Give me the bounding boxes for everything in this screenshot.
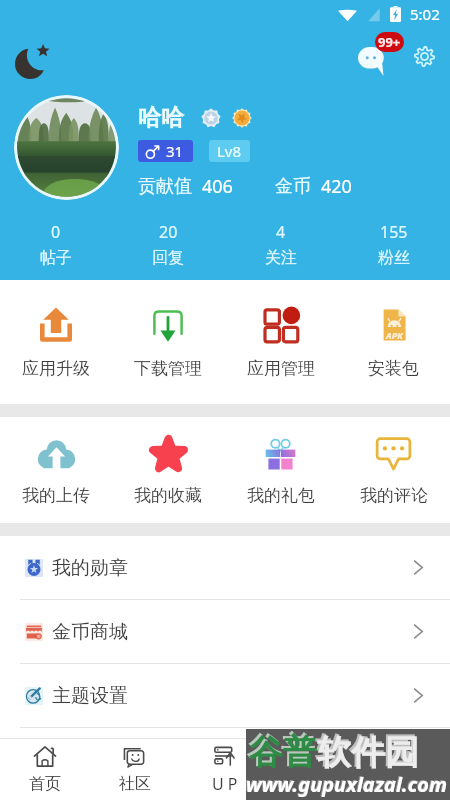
staticText: 哈哈	[138, 103, 184, 132]
staticText: www.gupuxlazal.com	[246, 771, 448, 798]
button[interactable]: 我的礼包	[224, 417, 337, 523]
staticText: U P	[212, 773, 238, 795]
button[interactable]: 社区	[90, 739, 180, 800]
staticText: 软件园	[317, 731, 419, 774]
staticText: 帖子	[40, 248, 72, 268]
staticText: 155	[380, 221, 408, 243]
staticText: 应用升级	[22, 358, 90, 379]
button[interactable]: U P	[180, 739, 270, 800]
button[interactable]: 我的	[360, 739, 450, 800]
staticText: 420	[321, 174, 352, 199]
button[interactable]: Avatar	[14, 95, 119, 200]
staticText: Lv8	[217, 141, 242, 161]
staticText: 金币商城	[52, 620, 128, 644]
staticText: 谷普	[249, 731, 317, 774]
staticText: 5:02	[410, 4, 440, 24]
staticText: 金币	[275, 175, 311, 198]
staticText: 谷普	[247, 729, 315, 772]
button[interactable]: Settings	[401, 33, 447, 79]
staticText: 粉丝	[378, 248, 410, 268]
staticText: 首页	[29, 774, 61, 794]
button[interactable]: 0	[0, 221, 112, 268]
staticText: 31	[166, 141, 184, 161]
staticText: 20	[159, 221, 178, 243]
staticText: 关注	[265, 248, 297, 268]
button[interactable]: 我的勋章	[0, 536, 450, 599]
staticText: 我的评论	[360, 485, 428, 506]
staticText: 我的	[389, 774, 421, 794]
staticText: 游戏	[299, 774, 331, 794]
button[interactable]: 4	[224, 221, 337, 268]
staticText: APK	[386, 329, 403, 341]
button[interactable]: Night mode	[8, 36, 58, 86]
button[interactable]: 游戏	[270, 739, 360, 800]
staticText: 贡献值	[138, 175, 192, 198]
staticText: 406	[202, 174, 233, 199]
staticText: 下载管理	[134, 358, 202, 379]
staticText: 应用管理	[247, 358, 315, 379]
button[interactable]: 155	[337, 221, 450, 268]
staticText: 0	[51, 221, 61, 243]
staticText: 社区	[119, 774, 151, 794]
staticText: 99+	[378, 33, 401, 51]
button[interactable]: Messages	[352, 30, 404, 82]
staticText: 4	[276, 221, 286, 243]
staticText: 我的礼包	[247, 485, 315, 506]
button[interactable]: 我的收藏	[112, 417, 224, 523]
staticText: 安装包	[368, 358, 419, 379]
button[interactable]: 我的评论	[337, 417, 450, 523]
staticText: 主题设置	[52, 684, 128, 708]
staticText: 我的勋章	[52, 556, 128, 580]
staticText: 我的上传	[22, 485, 90, 506]
button[interactable]: 首页	[0, 739, 90, 800]
button[interactable]: 20	[112, 221, 224, 268]
button[interactable]: 主题设置	[0, 664, 450, 727]
button[interactable]: 应用管理	[224, 280, 337, 404]
button[interactable]: 应用升级	[0, 280, 112, 404]
button[interactable]: 下载管理	[112, 280, 224, 404]
staticText: 软件园	[315, 729, 417, 772]
button[interactable]: 金币商城	[0, 600, 450, 663]
button[interactable]: APK	[337, 280, 450, 404]
staticText: www.gupuxlazal.com	[245, 770, 447, 797]
button[interactable]: 我的上传	[0, 417, 112, 523]
staticText: 回复	[152, 248, 184, 268]
staticText: 我的收藏	[134, 485, 202, 506]
